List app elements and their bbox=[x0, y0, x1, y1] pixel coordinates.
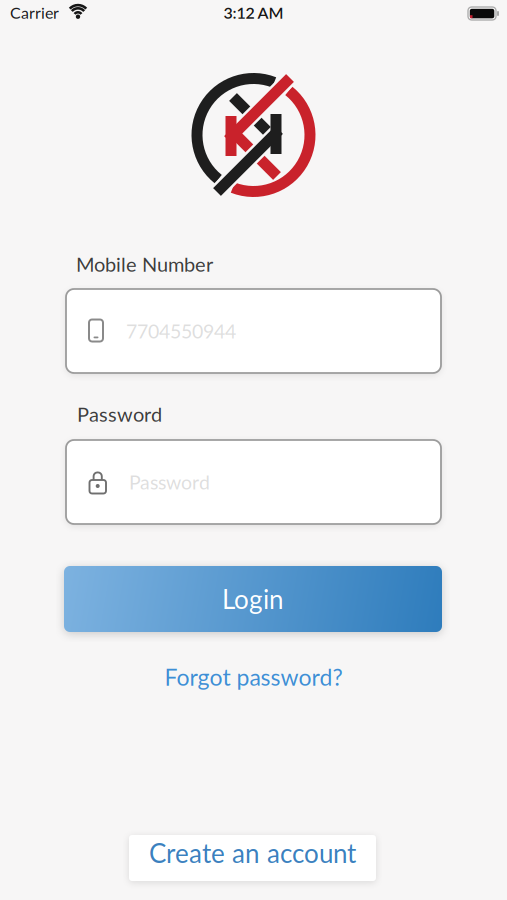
button[interactable]: Create an account bbox=[129, 835, 376, 881]
staticText: Carrier bbox=[10, 3, 59, 22]
staticText: 3:12 AM bbox=[223, 3, 283, 22]
staticText: Forgot password? bbox=[164, 663, 342, 691]
button[interactable]: Mobile Number bbox=[66, 289, 441, 373]
staticText: Login bbox=[222, 583, 284, 615]
staticText: Create an account bbox=[149, 837, 356, 869]
staticText: Password bbox=[77, 402, 162, 426]
staticText: Password bbox=[129, 470, 210, 494]
staticText: 7704550944 bbox=[126, 319, 236, 343]
button[interactable]: Forgot password? bbox=[164, 663, 342, 691]
button[interactable]: Login bbox=[64, 566, 442, 632]
staticText: Mobile Number bbox=[76, 252, 213, 276]
button[interactable]: Password bbox=[66, 440, 441, 524]
